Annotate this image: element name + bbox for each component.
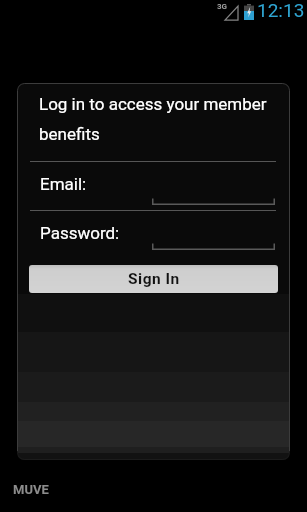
button[interactable] bbox=[152, 235, 275, 250]
button[interactable]: Sign In bbox=[29, 265, 278, 293]
staticText: Email: bbox=[40, 174, 87, 194]
staticText: 3G bbox=[217, 2, 228, 11]
staticText: 12:13 bbox=[257, 0, 305, 21]
staticText: benefits bbox=[39, 124, 100, 144]
staticText: MUVE bbox=[13, 482, 49, 497]
button[interactable] bbox=[152, 190, 275, 205]
staticText: Password: bbox=[40, 223, 120, 243]
staticText: Log in to access your member bbox=[39, 94, 267, 114]
staticText: Sign In bbox=[128, 270, 180, 288]
